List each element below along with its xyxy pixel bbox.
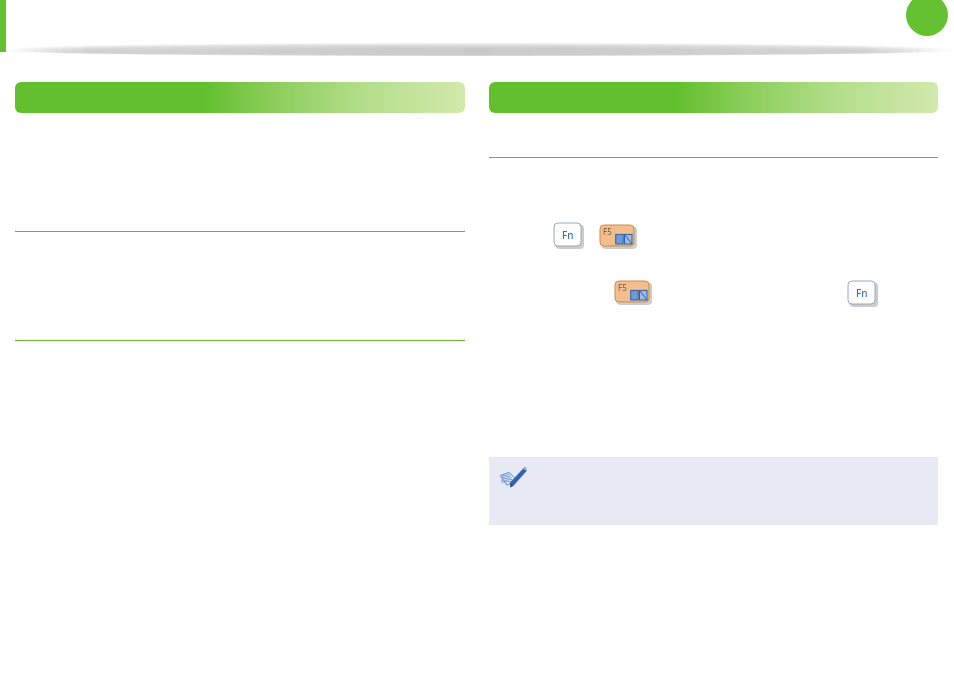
staticText: Fn [562, 228, 574, 242]
staticText: F5 [618, 282, 627, 293]
button[interactable]: Fn key [554, 223, 584, 249]
button[interactable]: F5 key [615, 281, 652, 305]
button[interactable]: F5 key [600, 225, 637, 249]
button[interactable]: Page number [906, 0, 948, 36]
button[interactable] [489, 82, 938, 113]
button[interactable] [15, 82, 465, 113]
staticText: Fn [856, 286, 868, 300]
staticText: F5 [603, 226, 612, 237]
other: Note [499, 464, 527, 492]
button[interactable]: Note [489, 457, 938, 525]
button[interactable]: Fn key [848, 281, 878, 307]
